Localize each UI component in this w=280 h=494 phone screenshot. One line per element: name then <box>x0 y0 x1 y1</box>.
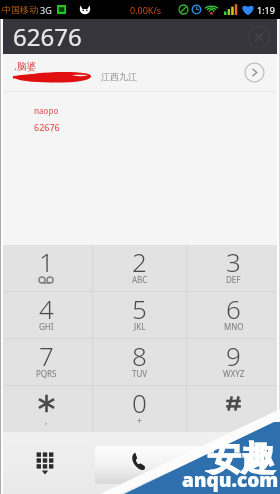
staticText: WXYZ <box>223 368 245 379</box>
staticText: 5 <box>132 291 147 326</box>
staticText: 4 <box>39 291 54 326</box>
staticText: , <box>45 415 48 426</box>
staticText: 3G <box>40 4 52 16</box>
staticText: + <box>137 415 142 426</box>
staticText: 中国移动 <box>2 4 38 15</box>
button[interactable]: 6 <box>187 292 280 338</box>
staticText: 0 <box>132 385 147 420</box>
staticText: 1:19 <box>257 4 275 16</box>
staticText: 6 <box>226 291 241 326</box>
button[interactable]: 7 <box>0 339 92 385</box>
button[interactable]: 5 <box>93 292 186 338</box>
button[interactable]: 0 <box>93 386 186 432</box>
staticText: 江西九江 <box>101 71 137 82</box>
button[interactable]: .脑婆 <box>0 54 280 91</box>
button[interactable]: 1 <box>0 245 92 291</box>
staticText: naopo <box>34 105 59 116</box>
button[interactable]: 8 <box>93 339 186 385</box>
staticText: 1 <box>39 244 54 279</box>
button[interactable]: 9 <box>187 339 280 385</box>
staticText: anqu.com <box>182 467 279 493</box>
staticText: 0.00K/s <box>130 4 162 16</box>
staticText: JKL <box>134 321 146 332</box>
staticText: DEF <box>226 274 241 285</box>
button[interactable] <box>187 386 280 432</box>
staticText: 62676 <box>34 121 60 133</box>
button[interactable]: Delete <box>247 25 271 49</box>
button[interactable]: 2 <box>93 245 186 291</box>
staticText: .脑婆 <box>14 59 37 73</box>
other: Details <box>244 62 265 83</box>
staticText: ABC <box>132 274 148 285</box>
staticText: PQRS <box>36 368 57 379</box>
button[interactable]: 3 <box>187 245 280 291</box>
staticText: 3 <box>226 244 241 279</box>
staticText: 9 <box>226 338 241 373</box>
staticText: TUV <box>132 368 148 379</box>
staticText: 8 <box>132 338 147 373</box>
button[interactable]: Call <box>95 446 255 484</box>
staticText: 62676 <box>13 20 82 53</box>
staticText: 7 <box>39 338 54 373</box>
staticText: 2 <box>132 244 147 279</box>
button[interactable]: 4 <box>0 292 92 338</box>
staticText: 安趣 <box>207 437 275 480</box>
button[interactable]: Dialpad <box>27 445 63 481</box>
staticText: GHI <box>39 321 54 332</box>
staticText: MNO <box>224 321 244 332</box>
button[interactable]: , <box>0 386 92 432</box>
